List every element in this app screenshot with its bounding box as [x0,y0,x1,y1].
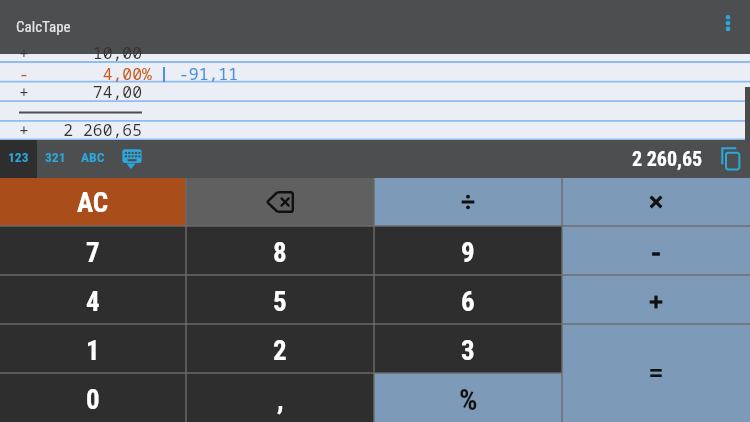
staticText: + [19,118,29,138]
button[interactable]: 3 [374,324,562,373]
staticText: -91,11 [179,62,239,82]
button[interactable]: 9 [374,226,562,275]
button[interactable]: Show keyboard [112,140,150,178]
button[interactable]: ABC [74,140,112,178]
button[interactable]: , [186,373,374,422]
button[interactable]: 7 [0,226,186,275]
staticText: + [19,80,29,100]
button[interactable]: Copy result [712,140,750,178]
staticText: ABC [81,149,105,165]
button[interactable]: Minus [562,226,750,275]
button[interactable]: Backspace [186,178,374,226]
button[interactable]: % [374,373,562,422]
staticText: 5 [273,286,287,318]
staticText: 123 [8,149,29,165]
staticText: 2 260,65 [632,147,703,170]
staticText: AC [77,187,109,219]
button[interactable]: 2 [186,324,374,373]
button[interactable]: Multiply [562,178,750,226]
staticText: 6 [461,286,475,318]
button[interactable]: 4 [0,275,186,324]
staticText: 321 [45,149,66,165]
button[interactable]: 1 [0,324,186,373]
staticText: 0 [86,384,100,416]
staticText: , [277,384,284,416]
button[interactable]: More options [706,0,750,54]
button[interactable]: 321 [37,140,74,178]
button[interactable]: 123 [0,140,37,178]
button[interactable]: 5 [186,275,374,324]
button[interactable]: Divide [374,178,562,226]
staticText: % [459,383,478,417]
staticText: 3 [461,335,475,367]
button[interactable]: Plus [562,275,750,324]
staticText: 1 [86,335,100,367]
staticText: 74,00 [41,80,142,100]
button[interactable]: 6 [374,275,562,324]
staticText: 2 [273,335,287,367]
staticText: CalcTape [16,18,71,36]
staticText: - [19,62,29,82]
staticText: 9 [461,237,475,269]
staticText: 8 [273,237,287,269]
staticText: 2 260,65 [41,118,142,138]
staticText: 7 [86,237,100,269]
staticText: % [142,62,152,82]
staticText: 4,00 [41,62,142,82]
staticText: 10,00 [41,41,142,61]
button[interactable]: Equals [562,324,750,422]
button[interactable]: AC [0,178,186,226]
button[interactable]: 0 [0,373,186,422]
staticText: + [19,41,29,61]
button[interactable]: 8 [186,226,374,275]
staticText: 4 [86,286,100,318]
